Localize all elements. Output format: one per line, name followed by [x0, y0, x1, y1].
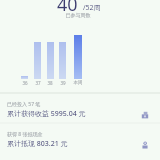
button[interactable]: 已经投入 57 笔	[0, 92, 160, 122]
staticText: 本周	[70, 80, 86, 86]
staticText: 37	[30, 80, 46, 86]
button[interactable]: 获得 8 张抵现金	[0, 122, 160, 152]
staticText: /52周	[83, 3, 101, 13]
staticText: 已参与周数	[0, 12, 158, 18]
other: Earnings detail	[141, 111, 149, 119]
staticText: 36	[17, 80, 33, 86]
staticText: 40	[57, 0, 78, 17]
staticText: 已经投入 57 笔	[7, 101, 41, 108]
staticText: 38	[42, 80, 58, 86]
staticText: 累计抵现 803.21 元	[7, 139, 68, 149]
staticText: 累计获得收益 5995.04 元	[7, 109, 86, 119]
other: Coupon detail	[141, 141, 149, 149]
staticText: 39	[55, 80, 71, 86]
staticText: 获得 8 张抵现金	[7, 131, 43, 138]
